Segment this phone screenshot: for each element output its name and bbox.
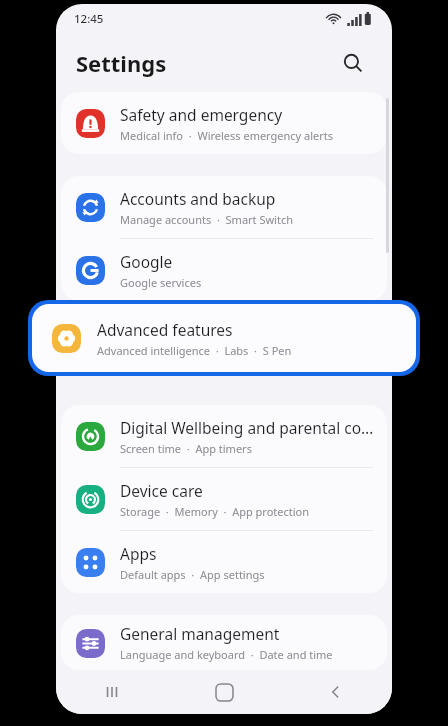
button[interactable]: Digital Wellbeing and parental controls (61, 405, 387, 467)
button[interactable]: Home (168, 670, 280, 714)
staticText: Language and keyboard · Date and time (120, 647, 333, 662)
button[interactable]: General management (61, 615, 387, 670)
staticText: General management (120, 623, 280, 644)
button[interactable]: Recents (56, 670, 168, 714)
staticText: Advanced features (97, 319, 233, 340)
staticText: Manage accounts · Smart Switch (120, 212, 293, 227)
staticText: 12:45 (74, 11, 104, 27)
button[interactable]: Google (61, 239, 387, 301)
staticText: Accounts and backup (120, 188, 276, 209)
staticText: Google services (120, 275, 202, 290)
button[interactable]: Back (280, 670, 392, 714)
staticText: Apps (120, 543, 157, 564)
button[interactable]: Search (336, 46, 370, 80)
button[interactable]: Safety and emergency (61, 92, 387, 154)
staticText: Default apps · App settings (120, 567, 265, 582)
staticText: Safety and emergency (120, 104, 283, 125)
staticText: Storage · Memory · App protection (120, 504, 310, 519)
staticText: Advanced intelligence · Labs · S Pen (97, 343, 292, 358)
staticText: Medical info · Wireless emergency alerts (120, 128, 334, 143)
button[interactable]: Apps (61, 531, 387, 593)
staticText: Google (120, 251, 173, 272)
staticText: Digital Wellbeing and parental controls (120, 417, 374, 438)
staticText: Settings (76, 48, 167, 78)
staticText: Screen time · App timers (120, 441, 252, 456)
button[interactable]: Accounts and backup (61, 176, 387, 238)
button[interactable]: Advanced features (32, 304, 416, 372)
button[interactable]: Device care (61, 468, 387, 530)
staticText: Device care (120, 480, 203, 501)
